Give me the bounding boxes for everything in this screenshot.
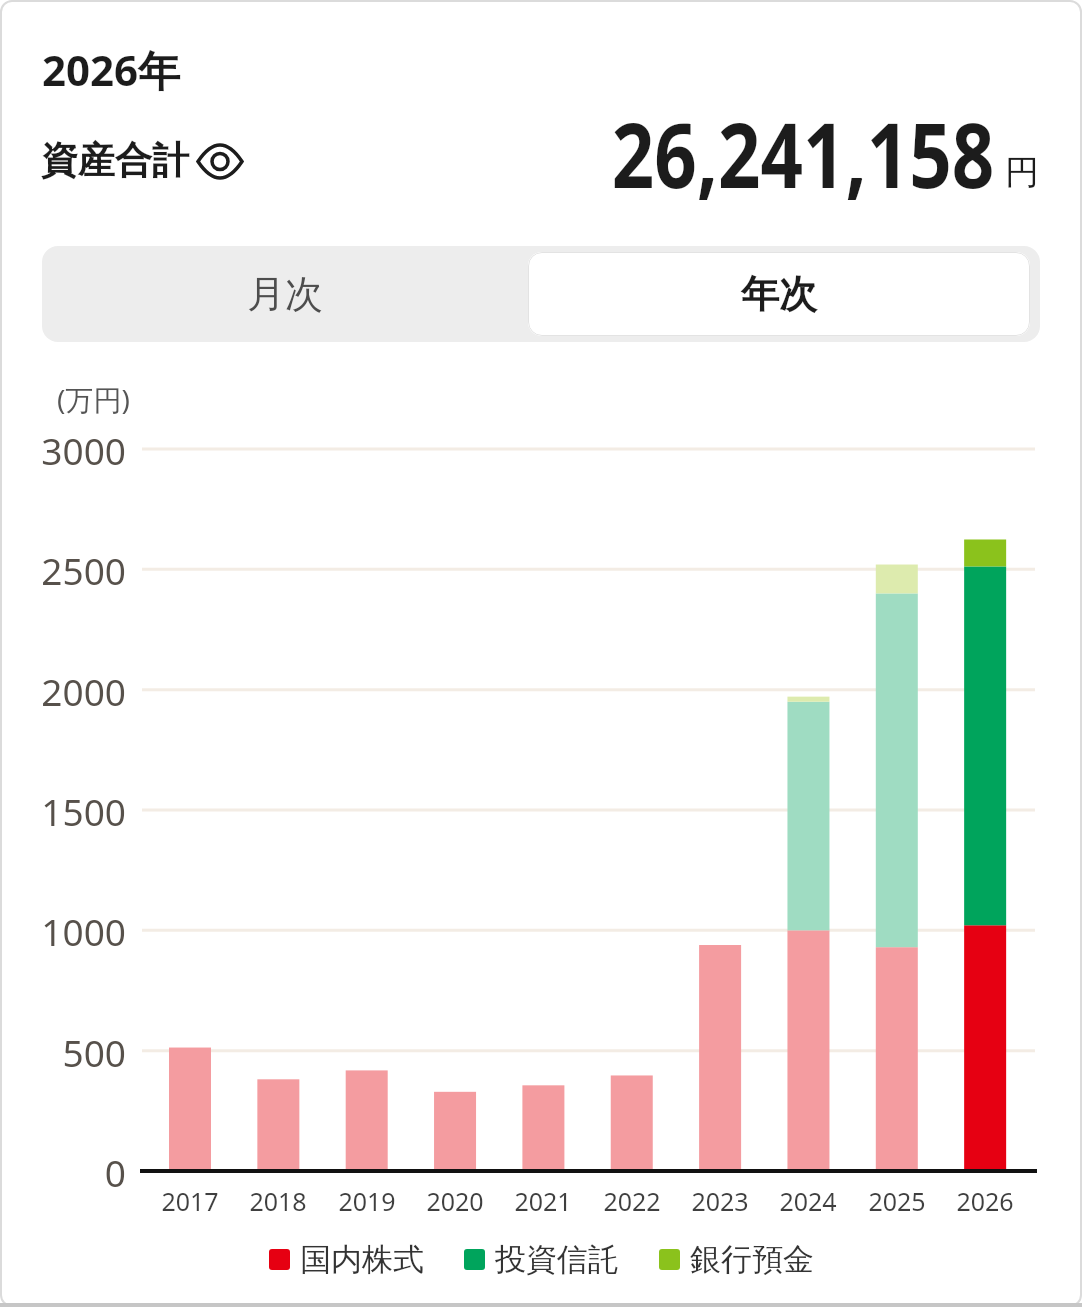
staticText: 2023 [675,1184,765,1218]
staticText: 円 [1005,151,1039,194]
staticText: 3000 [0,425,126,475]
staticText: 26,241,158 [612,92,995,215]
staticText: 国内株式 [300,1240,424,1279]
staticText: (万円) [57,380,130,418]
staticText: 年次 [741,270,817,318]
staticText: 2025 [852,1184,942,1218]
staticText: 投資信託 [495,1240,619,1279]
staticText: 2026 [940,1184,1030,1218]
staticText: 2018 [233,1184,323,1218]
button[interactable]: 国内株式 [269,1240,424,1279]
staticText: 資産合計 [41,137,189,184]
staticText: 2022 [587,1184,677,1218]
staticText: 2026年 [42,41,181,98]
staticText: 2020 [410,1184,500,1218]
button[interactable] [196,143,244,180]
staticText: 0 [0,1147,126,1197]
button[interactable]: 月次 [42,246,528,342]
staticText: 2021 [498,1184,588,1218]
staticText: 月次 [247,270,323,318]
staticText: 2017 [145,1184,235,1218]
staticText: 2500 [0,545,126,595]
button[interactable]: 銀行預金 [659,1240,814,1279]
staticText: 500 [0,1027,126,1077]
staticText: 2024 [763,1184,853,1218]
staticText: 2019 [322,1184,412,1218]
staticText: 2000 [0,666,126,716]
button[interactable]: 投資信託 [464,1240,619,1279]
staticText: 1500 [0,786,126,836]
staticText: 1000 [0,906,126,956]
staticText: 銀行預金 [690,1240,814,1279]
button[interactable]: 年次 [528,252,1030,336]
